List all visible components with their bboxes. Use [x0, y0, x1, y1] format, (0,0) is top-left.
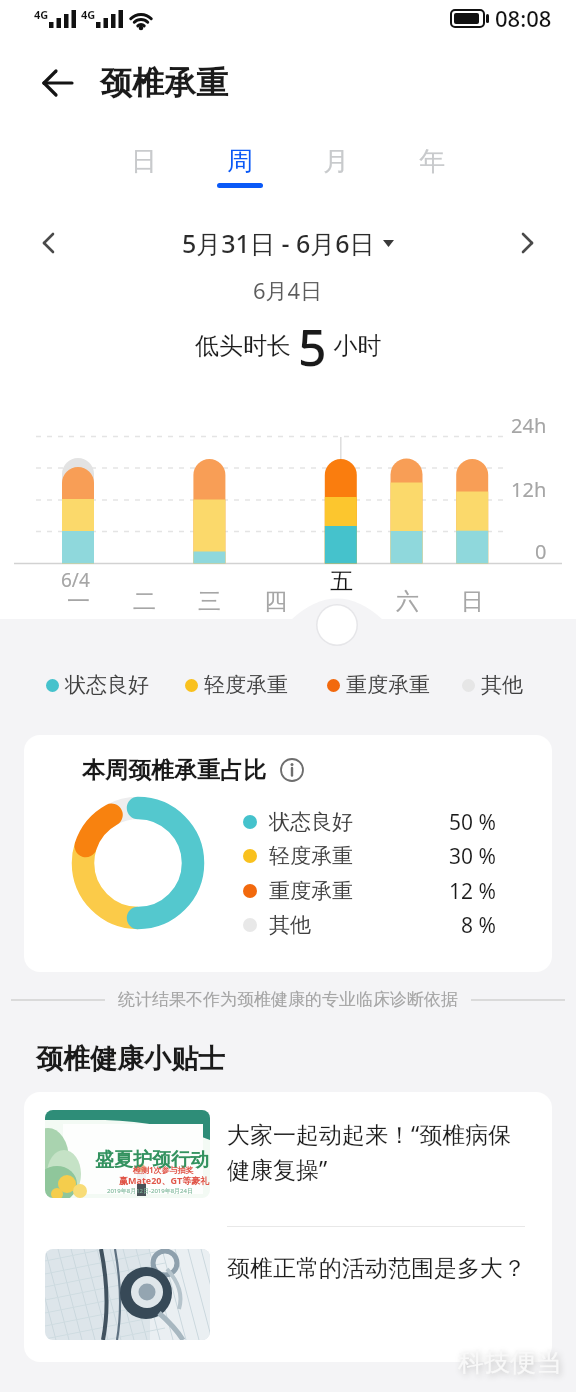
button[interactable]: 年: [384, 130, 480, 192]
button[interactable]: [276, 754, 308, 786]
staticText: 状态良好: [269, 809, 353, 835]
staticText: 4G: [81, 7, 96, 22]
staticText: 5月31日 - 6月6日: [182, 226, 375, 260]
staticText: 轻度承重: [204, 672, 288, 698]
button[interactable]: [287, 590, 387, 650]
button[interactable]: [24, 1230, 552, 1356]
staticText: 其他: [269, 912, 311, 938]
staticText: 检测1次参与抽奖: [133, 1164, 194, 1175]
staticText: 8 %: [461, 911, 496, 940]
staticText: 0: [535, 538, 547, 565]
staticText: 08:08: [495, 3, 552, 33]
button[interactable]: [24, 1098, 552, 1224]
staticText: 12 %: [449, 877, 496, 906]
staticText: 二: [133, 587, 156, 616]
staticText: 六: [396, 587, 419, 616]
staticText: 状态良好: [65, 672, 149, 698]
staticText: 低头时长: [195, 328, 298, 361]
staticText: 日: [131, 145, 157, 178]
staticText: 盛夏护颈行动: [95, 1148, 209, 1172]
staticText: 年: [419, 145, 445, 178]
staticText: 重度承重: [269, 878, 353, 904]
staticText: 6/4: [61, 567, 90, 593]
staticText: 50 %: [449, 808, 496, 837]
staticText: 三: [198, 587, 221, 616]
staticText: 12h: [511, 476, 547, 503]
staticText: 颈椎承重: [100, 63, 228, 103]
staticText: 其他: [481, 672, 523, 698]
button[interactable]: [508, 223, 548, 263]
staticText: 四: [264, 587, 287, 616]
staticText: 24h: [511, 412, 547, 439]
staticText: 一: [67, 587, 90, 616]
button[interactable]: 周: [192, 130, 288, 192]
staticText: 月: [323, 145, 349, 178]
staticText: 2019年8月12日-2019年8月24日: [107, 1187, 193, 1195]
staticText: 5: [298, 313, 327, 375]
staticText: 大家一起动起来！“颈椎病保 健康复操”: [227, 1118, 512, 1185]
staticText: 轻度承重: [269, 843, 353, 869]
staticText: 统计结果不作为颈椎健康的专业临床诊断依据: [118, 989, 458, 1010]
button[interactable]: 5月31日 - 6月6日: [0, 213, 576, 273]
staticText: 周: [227, 145, 253, 178]
button[interactable]: [28, 223, 68, 263]
staticText: 颈椎正常的活动范围是多大？: [227, 1254, 526, 1283]
staticText: 30 %: [449, 842, 496, 871]
button[interactable]: [34, 59, 82, 107]
staticText: 4G: [34, 7, 49, 22]
staticText: 小时: [327, 328, 382, 361]
staticText: 赢Mate20、GT等豪礼: [119, 1174, 210, 1186]
button[interactable]: 月: [288, 130, 384, 192]
staticText: 五: [330, 567, 353, 596]
staticText: 6月4日: [253, 275, 323, 305]
staticText: 本周颈椎承重占比: [82, 756, 266, 785]
staticText: 颈椎健康小贴士: [36, 1042, 225, 1076]
button[interactable]: 日: [96, 130, 192, 192]
staticText: 重度承重: [346, 672, 430, 698]
staticText: 科技便当: [458, 1346, 562, 1379]
staticText: 日: [461, 587, 484, 616]
